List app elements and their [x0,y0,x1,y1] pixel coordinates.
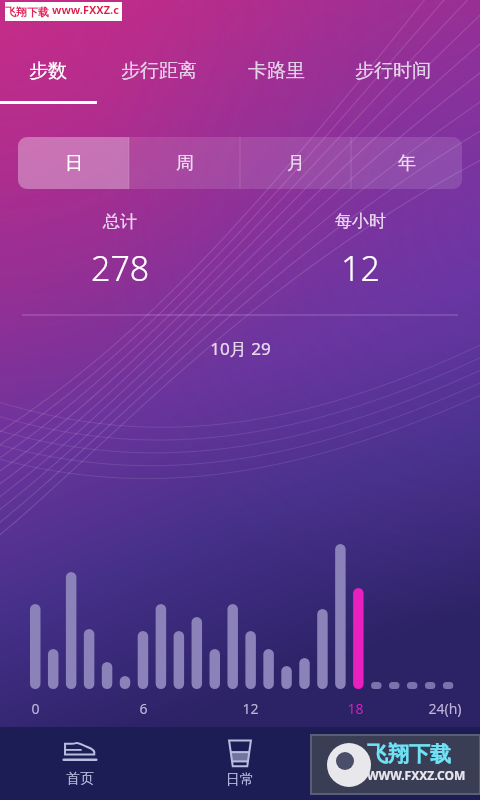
staticText: 月 [287,152,305,175]
button[interactable]: 我的 [320,727,480,800]
button[interactable]: 周 [129,137,240,189]
staticText: 24(h) [428,699,462,718]
button[interactable]: 步行距离 [99,48,219,94]
staticText: 日常 [226,771,254,789]
staticText: 18 [347,699,364,718]
staticText: 日 [65,152,83,175]
button[interactable]: 步数 [0,48,96,94]
staticText: WWW.FXXZ.COM [367,767,466,783]
button[interactable]: 步行时间 [333,48,453,94]
staticText: 首页 [66,770,94,788]
staticText: 总计 [103,211,137,232]
staticText: 年 [398,152,416,175]
staticText: www.FXXZ.com [52,2,122,21]
staticText: 6 [139,699,148,718]
button[interactable]: 月 [240,137,351,189]
button[interactable]: 卡路里 [228,48,324,94]
staticText: 飞翔下载 [367,741,451,767]
staticText: 278 [91,245,150,291]
button[interactable]: 日常 [160,727,320,800]
button[interactable]: 日 [18,137,129,189]
button[interactable]: 年 [351,137,462,189]
staticText: 步行距离 [121,59,197,83]
staticText: 我的 [386,770,414,788]
staticText: 步行时间 [355,59,431,83]
staticText: 每小时 [335,211,386,232]
staticText: 飞翔下载 [5,5,49,19]
staticText: 步数 [29,59,67,83]
staticText: 周 [176,152,194,175]
staticText: 卡路里 [248,59,305,83]
button[interactable]: 首页 [0,727,160,800]
staticText: 12 [341,245,380,291]
staticText: 12 [242,699,259,718]
staticText: 10月 29 [210,337,271,360]
staticText: 0 [31,699,40,718]
